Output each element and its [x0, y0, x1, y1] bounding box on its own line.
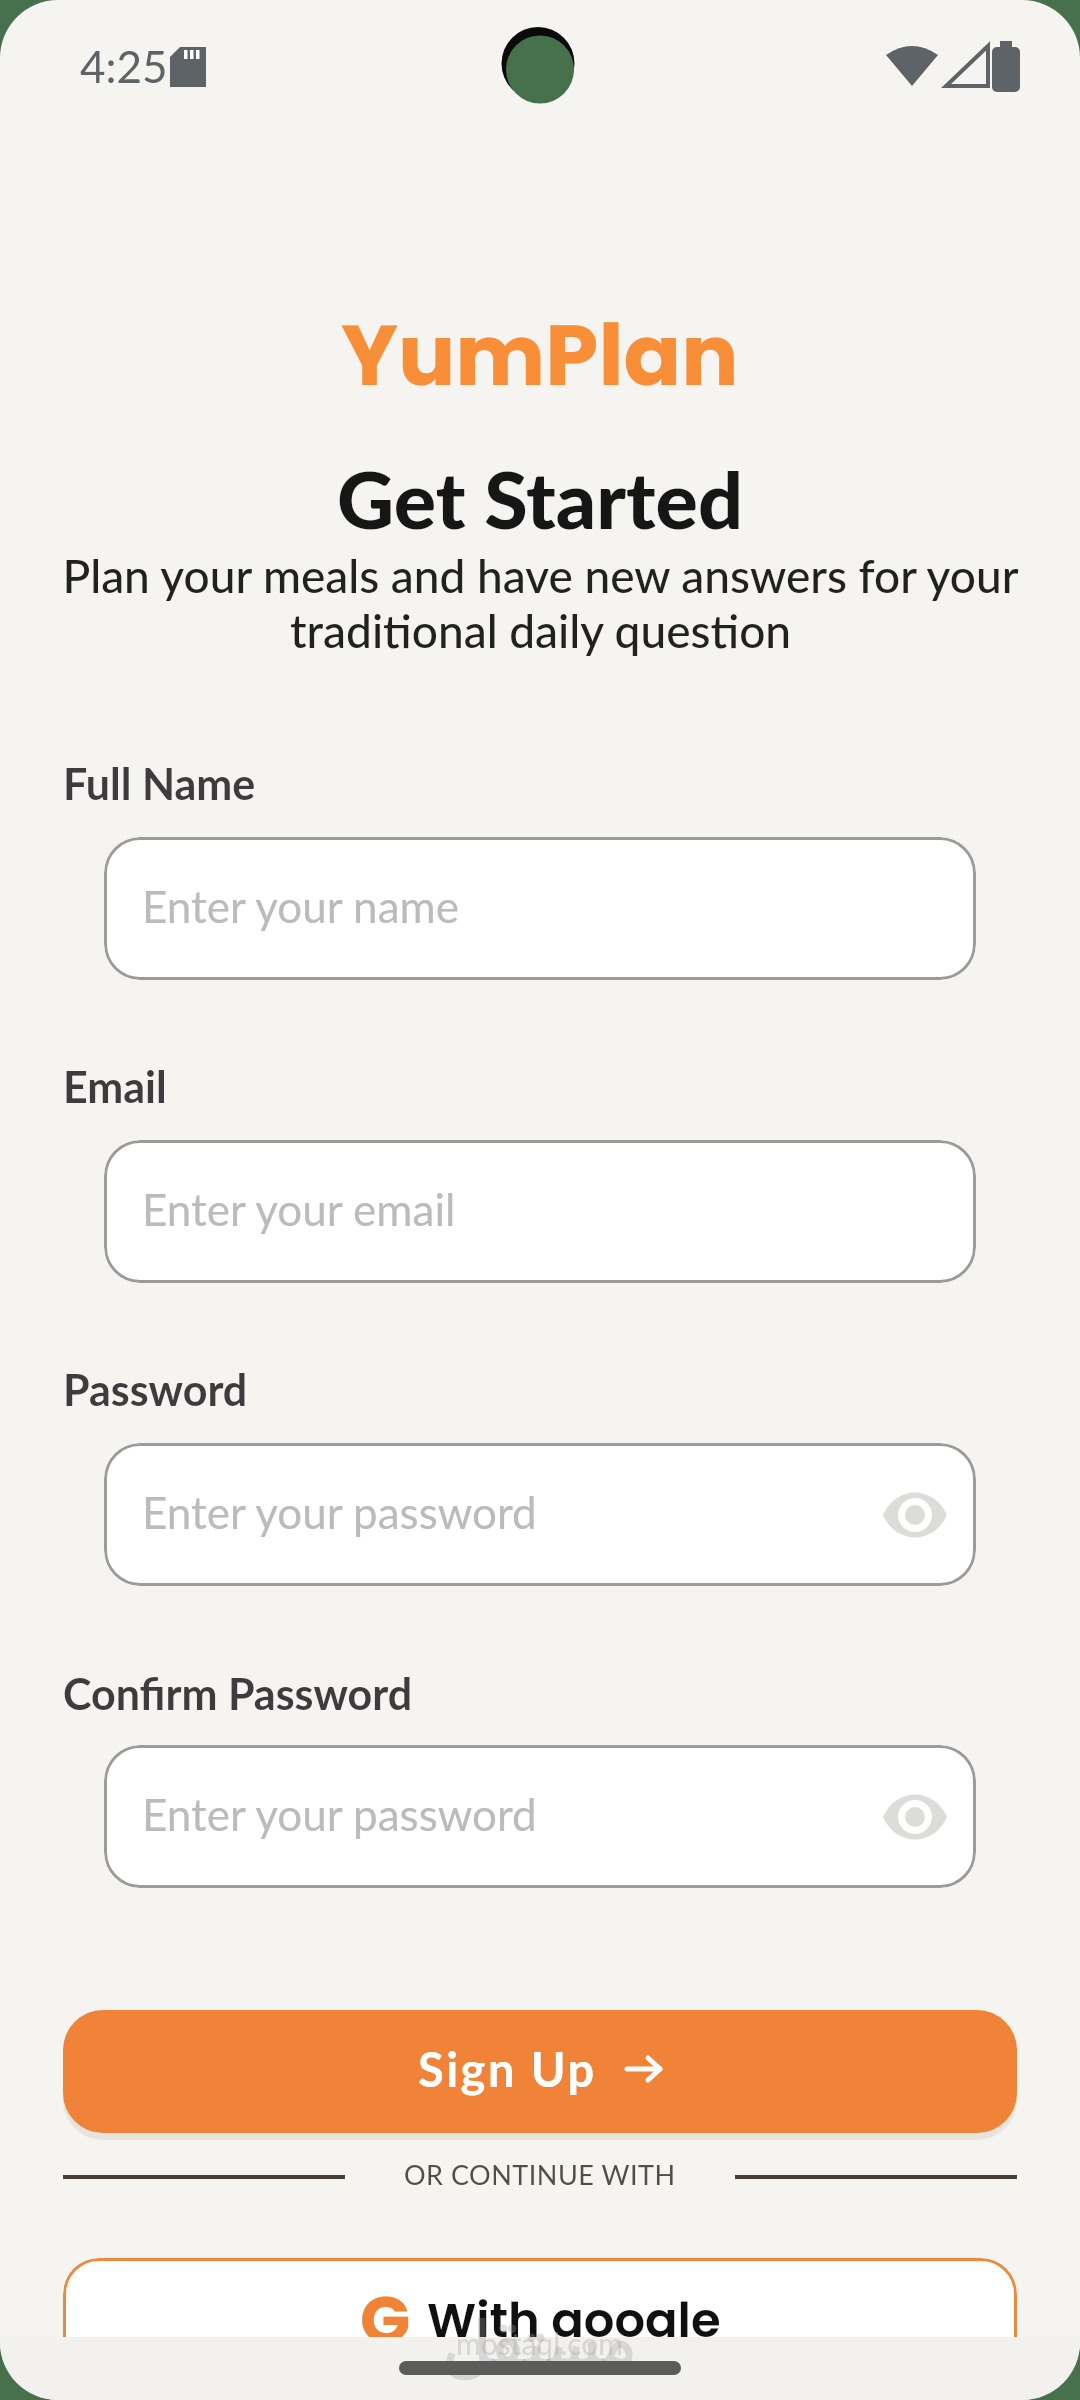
staticText: Enter your name — [142, 880, 459, 933]
button[interactable]: Sign Up — [63, 2010, 1017, 2133]
staticText: Sign Up — [418, 2041, 597, 2097]
staticText: Plan your meals and have new answers for… — [62, 548, 1019, 658]
button[interactable]: Enter your name — [104, 837, 976, 980]
button[interactable]: Enter your password — [104, 1745, 976, 1888]
staticText: Confirm Password — [63, 1668, 413, 1720]
button[interactable]: Enter your password — [104, 1443, 976, 1586]
staticText: Enter your password — [142, 1486, 537, 1539]
staticText: G — [360, 2274, 411, 2366]
staticText: Password — [63, 1364, 248, 1416]
staticText: مستقل — [445, 2277, 636, 2400]
staticText: Get Started — [337, 451, 744, 546]
staticText: Email — [63, 1061, 167, 1113]
button[interactable]: Enter your email — [104, 1140, 976, 1283]
button[interactable]: G — [63, 2258, 1017, 2388]
staticText: OR CONTINUE WITH — [404, 2158, 676, 2190]
staticText: YumPlan — [341, 296, 739, 415]
staticText: 4:25 — [80, 40, 168, 93]
staticText: With google — [427, 2287, 721, 2354]
staticText: Enter your email — [142, 1183, 456, 1236]
staticText: Enter your password — [142, 1788, 537, 1841]
staticText: mostaql.com — [456, 2325, 624, 2361]
staticText: Full Name — [63, 758, 256, 810]
